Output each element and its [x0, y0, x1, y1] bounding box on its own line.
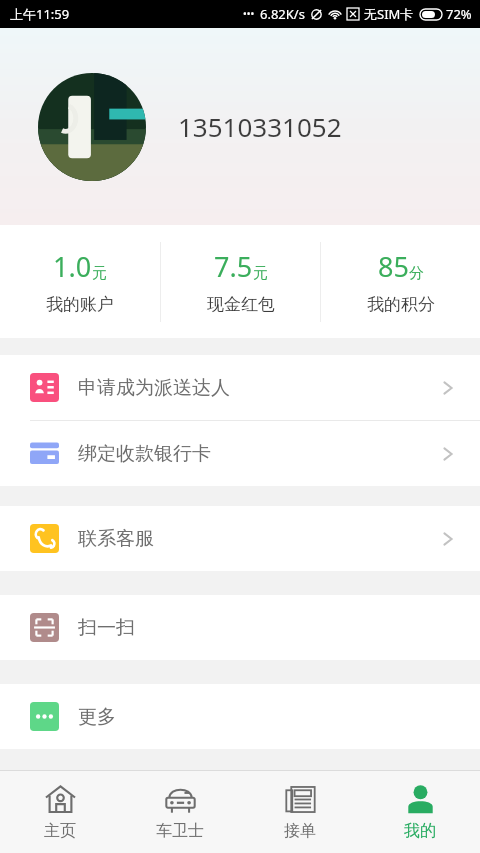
staticText: 上午11:59 — [10, 5, 70, 23]
staticText: 更多 — [78, 705, 116, 729]
staticText: 元 — [253, 264, 268, 283]
button[interactable]: 主页 — [0, 771, 120, 853]
button[interactable]: 绑定收款银行卡 — [0, 421, 480, 486]
button[interactable]: 联系客服 — [0, 506, 480, 571]
staticText: 扫一扫 — [78, 616, 135, 640]
staticText: 绑定收款银行卡 — [78, 442, 211, 466]
staticText: 我的 — [404, 821, 436, 841]
staticText: 现金红包 — [207, 294, 275, 315]
staticText: 车卫士 — [156, 821, 204, 841]
staticText: 我的账户 — [46, 294, 114, 315]
staticText: 85 — [378, 248, 409, 285]
staticText: ••• — [243, 7, 255, 21]
staticText: 72% — [446, 5, 472, 23]
staticText: 6.82K/s — [260, 5, 305, 23]
staticText: 无SIM卡 — [364, 5, 414, 23]
button[interactable]: 7.5 — [161, 225, 320, 338]
button[interactable]: 我的 — [360, 771, 480, 853]
staticText: 我的积分 — [367, 294, 435, 315]
staticText: 7.5 — [214, 248, 253, 285]
button[interactable]: 车卫士 — [120, 771, 240, 853]
staticText: 申请成为派送达人 — [78, 376, 230, 400]
staticText: 分 — [409, 264, 424, 283]
staticText: 元 — [92, 264, 107, 283]
button[interactable]: 申请成为派送达人 — [0, 355, 480, 420]
button[interactable]: 扫一扫 — [0, 595, 480, 660]
button[interactable]: 1.0 — [0, 225, 160, 338]
staticText: 联系客服 — [78, 527, 154, 551]
staticText: 接单 — [284, 821, 316, 841]
button[interactable]: 接单 — [240, 771, 360, 853]
staticText: 13510331052 — [178, 109, 342, 144]
button[interactable]: 更多 — [0, 684, 480, 749]
staticText: 主页 — [44, 821, 76, 841]
button[interactable]: 85 — [321, 225, 480, 338]
staticText: 1.0 — [53, 248, 92, 285]
